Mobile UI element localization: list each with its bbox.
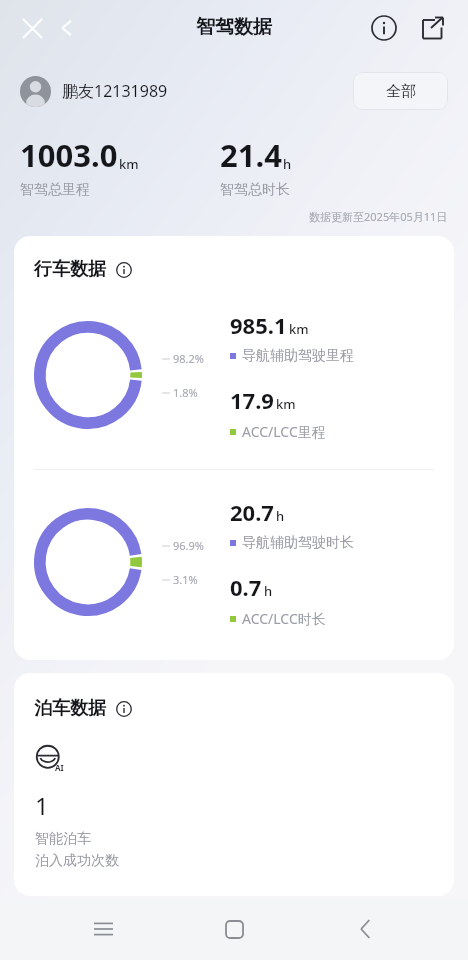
button[interactable]: Home xyxy=(211,906,257,952)
staticText: 导航辅助驾驶时长 xyxy=(242,534,354,552)
button[interactable]: Back xyxy=(50,11,84,45)
staticText: 导航辅助驾驶里程 xyxy=(242,347,354,365)
staticText: 21.4 xyxy=(220,134,282,176)
staticText: 鹏友12131989 xyxy=(62,80,168,102)
staticText: 数据更新至2025年05月11日 xyxy=(309,209,448,224)
staticText: 智驾数据 xyxy=(196,15,272,39)
button[interactable]: 全部 xyxy=(353,72,448,110)
staticText: 全部 xyxy=(386,82,416,101)
staticText: 20.7 xyxy=(230,497,274,527)
staticText: 行车数据 xyxy=(34,258,106,281)
staticText: h xyxy=(283,155,292,173)
staticText: h xyxy=(276,507,285,525)
staticText: 17.9 xyxy=(230,385,274,415)
button[interactable]: Close xyxy=(14,10,50,46)
staticText: km xyxy=(119,155,139,173)
button[interactable]: Info xyxy=(364,8,404,48)
staticText: AI xyxy=(55,762,64,773)
staticText: 1 xyxy=(35,789,49,822)
staticText: 泊入成功次数 xyxy=(35,852,119,870)
button[interactable]: Back xyxy=(342,906,388,952)
button[interactable]: Share xyxy=(412,8,452,48)
staticText: ACC/LCC时长 xyxy=(242,609,326,628)
staticText: 98.2% xyxy=(173,351,204,366)
staticText: 智驾总时长 xyxy=(220,181,290,199)
staticText: km xyxy=(276,395,296,413)
staticText: km xyxy=(289,320,309,338)
staticText: 1003.0 xyxy=(20,134,118,176)
staticText: 智驾总里程 xyxy=(20,181,90,199)
button[interactable]: 行车数据 info xyxy=(113,259,135,281)
button[interactable]: 泊车数据 info xyxy=(113,698,135,720)
staticText: 3.1% xyxy=(173,572,198,587)
staticText: 1.8% xyxy=(173,385,198,400)
staticText: ACC/LCC里程 xyxy=(242,422,326,441)
button[interactable]: Profile avatar xyxy=(20,76,51,107)
staticText: h xyxy=(264,582,273,600)
staticText: 0.7 xyxy=(230,572,262,602)
staticText: 智能泊车 xyxy=(35,830,91,848)
staticText: 泊车数据 xyxy=(34,697,106,720)
staticText: 985.1 xyxy=(230,310,287,340)
button[interactable]: Recent apps xyxy=(80,906,126,952)
button[interactable]: 行车数据 xyxy=(14,236,454,660)
button[interactable]: 泊车数据 xyxy=(14,673,454,896)
staticText: 96.9% xyxy=(173,538,204,553)
